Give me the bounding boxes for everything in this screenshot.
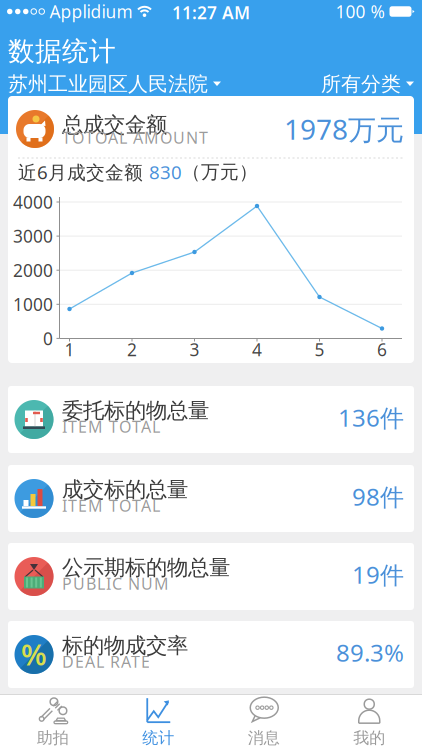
staticText: 消息 (248, 728, 280, 748)
staticText: 3 (189, 338, 199, 361)
staticText: 统计 (142, 728, 174, 748)
staticText: 4000 (13, 190, 53, 213)
button[interactable]: 公示期标的物总量 (8, 543, 414, 610)
staticText: Applidium (49, 0, 132, 23)
staticText: 总成交金额 (62, 112, 167, 138)
button[interactable]: 苏州工业园区人民法院 (8, 72, 221, 96)
button[interactable]: 委托标的物总量 (8, 386, 414, 453)
button[interactable]: 统计 (105, 695, 211, 750)
staticText: % (21, 634, 47, 673)
staticText: 苏州工业园区人民法院 (8, 72, 208, 96)
staticText: 5 (314, 338, 324, 361)
staticText: 1 (64, 338, 74, 361)
button[interactable]: 我的 (316, 695, 422, 750)
staticText: 19件 (352, 559, 404, 590)
staticText: 近6月成交金额 (18, 160, 149, 184)
staticText: 2 (127, 338, 137, 361)
staticText: 100 % (335, 0, 384, 23)
staticText: 数据统计 (8, 35, 116, 68)
staticText: ITEM TOTAL (62, 416, 160, 437)
staticText: 11:27 AM (172, 1, 250, 24)
staticText: 我的 (353, 728, 385, 748)
staticText: 136件 (338, 402, 404, 433)
button[interactable]: % (8, 621, 414, 688)
staticText: 2000 (13, 259, 53, 282)
staticText: 委托标的物总量 (62, 397, 209, 424)
button[interactable]: 所有分类 (321, 72, 414, 96)
staticText: 成交标的总量 (62, 476, 188, 503)
staticText: 公示期标的物总量 (62, 554, 230, 581)
staticText: 3000 (13, 225, 53, 248)
staticText: 98件 (352, 481, 404, 512)
staticText: 1978万元 (284, 110, 404, 148)
staticText: （万元） (182, 160, 258, 183)
staticText: 4 (252, 338, 262, 361)
staticText: 助拍 (37, 728, 69, 748)
staticText: DEAL RATE (62, 651, 150, 672)
staticText: ITEM TOTAL (62, 495, 160, 516)
staticText: 1000 (13, 293, 53, 316)
staticText: 6 (377, 338, 387, 361)
staticText: 0 (43, 327, 53, 350)
staticText: 830 (149, 160, 182, 184)
button[interactable]: 消息 (211, 695, 316, 750)
button[interactable]: 助拍 (0, 695, 105, 750)
staticText: 所有分类 (321, 72, 401, 96)
staticText: TOTOAL AMOUNT (62, 127, 208, 148)
staticText: PUBLIC NUM (62, 573, 169, 594)
staticText: 89.3% (336, 637, 404, 668)
button[interactable]: 成交标的总量 (8, 465, 414, 532)
staticText: 标的物成交率 (62, 632, 188, 659)
